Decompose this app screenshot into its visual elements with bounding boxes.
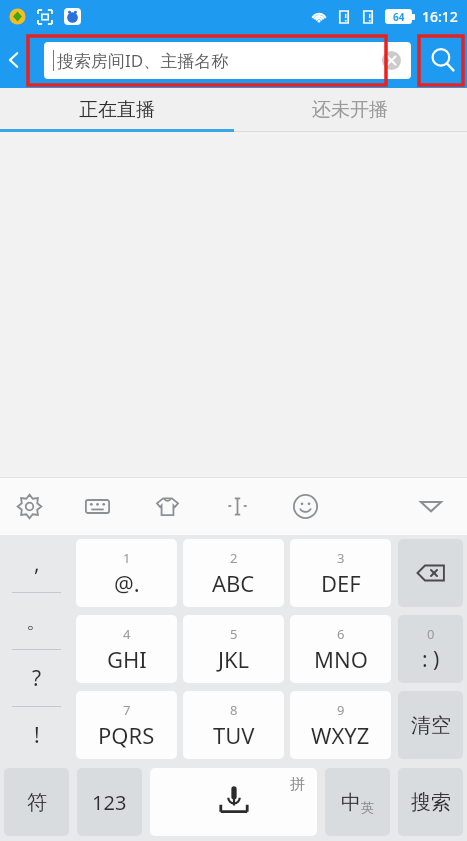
button[interactable]: 0 — [398, 615, 463, 683]
button[interactable]: Keyboard layout — [78, 487, 116, 525]
button[interactable]: Settings — [10, 487, 48, 525]
staticText: 6 — [337, 625, 345, 643]
staticText: ABC — [212, 568, 255, 598]
button[interactable]: 。 — [0, 593, 73, 649]
staticText: : ) — [422, 645, 440, 674]
staticText: 符 — [27, 790, 47, 815]
staticText: , — [34, 549, 40, 578]
button[interactable]: 4 — [76, 615, 177, 683]
staticText: 搜索 — [411, 790, 451, 815]
staticText: 正在直播 — [79, 98, 155, 122]
staticText: PQRS — [98, 720, 155, 750]
button[interactable]: Emoji — [286, 487, 324, 525]
staticText: DEF — [321, 568, 361, 598]
button[interactable]: 7 — [76, 691, 177, 759]
button[interactable]: 符 — [4, 768, 69, 836]
staticText: MNO — [314, 644, 368, 674]
staticText: 1 — [123, 549, 131, 567]
button[interactable]: 正在直播 — [0, 88, 233, 132]
staticText: @. — [114, 568, 140, 598]
button[interactable]: 9 — [290, 691, 391, 759]
button[interactable]: Text cursor — [218, 487, 256, 525]
button[interactable]: Space — [150, 768, 317, 836]
button[interactable]: 还未开播 — [233, 88, 467, 132]
button[interactable]: 6 — [290, 615, 391, 683]
button[interactable]: 2 — [183, 539, 284, 607]
staticText: 拼 — [290, 775, 305, 794]
staticText: 3 — [337, 549, 345, 567]
button[interactable]: ? — [0, 650, 73, 706]
staticText: 7 — [123, 701, 131, 719]
button[interactable]: 中 — [325, 768, 390, 836]
staticText: 16:12 — [422, 7, 458, 26]
staticText: 5 — [230, 625, 238, 643]
staticText: 。 — [26, 608, 47, 634]
staticText: 0 — [427, 625, 435, 643]
button[interactable]: ! — [0, 707, 73, 763]
button[interactable]: Hide keyboard — [409, 484, 453, 528]
button[interactable]: Back — [0, 32, 28, 88]
button[interactable]: Search — [419, 32, 467, 88]
staticText: GHI — [107, 644, 147, 674]
button[interactable]: 1 — [76, 539, 177, 607]
staticText: 2 — [230, 549, 238, 567]
staticText: WXYZ — [311, 720, 370, 750]
staticText: 9 — [337, 701, 345, 719]
staticText: TUV — [213, 720, 255, 750]
button[interactable]: 搜索房间ID、主播名称 — [44, 42, 411, 79]
button[interactable]: , — [0, 535, 73, 592]
staticText: 123 — [92, 789, 127, 816]
staticText: 搜索房间ID、主播名称 — [57, 49, 229, 72]
staticText: 清空 — [411, 713, 451, 738]
button[interactable]: 5 — [183, 615, 284, 683]
button[interactable]: 清空 — [398, 691, 463, 759]
button[interactable]: 3 — [290, 539, 391, 607]
staticText: ? — [32, 664, 42, 693]
staticText: JKL — [218, 644, 250, 674]
staticText: 4 — [123, 625, 131, 643]
button[interactable]: 123 — [77, 768, 142, 836]
staticText: 中 — [341, 790, 361, 815]
button[interactable]: 8 — [183, 691, 284, 759]
staticText: 64 — [393, 10, 405, 24]
staticText: 8 — [230, 701, 238, 719]
staticText: ! — [34, 721, 40, 750]
button[interactable]: Theme — [148, 487, 186, 525]
staticText: 还未开播 — [312, 98, 388, 122]
button[interactable]: 搜索 — [398, 768, 463, 836]
button[interactable]: Clear text — [381, 50, 402, 71]
staticText: 英 — [361, 799, 374, 815]
button[interactable]: Backspace — [398, 539, 463, 607]
